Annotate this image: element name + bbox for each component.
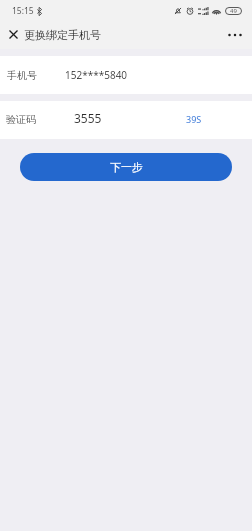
button[interactable]: Close	[4, 25, 22, 43]
button[interactable]: 手机号	[0, 56, 252, 94]
staticText: 39S	[186, 113, 202, 125]
staticText: 49	[230, 7, 237, 15]
staticText: 下一步	[110, 160, 143, 174]
staticText: 15:15	[12, 5, 34, 17]
staticText: 更换绑定手机号	[24, 28, 101, 42]
button[interactable]: More options	[226, 26, 244, 44]
staticText: 手机号	[7, 69, 37, 82]
staticText: 3555	[74, 110, 102, 126]
button[interactable]: 39S	[178, 107, 210, 131]
staticText: 验证码	[6, 113, 36, 126]
button[interactable]: 下一步	[20, 153, 232, 181]
staticText: 152****5840	[65, 68, 128, 82]
